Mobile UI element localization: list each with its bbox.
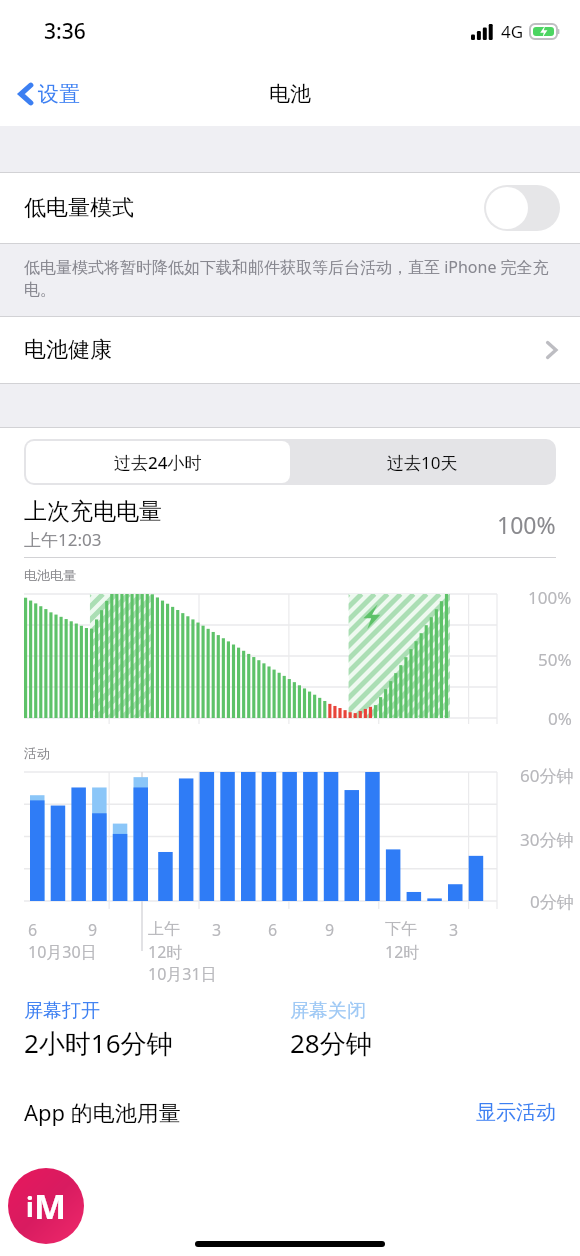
staticText: 100%: [497, 509, 556, 540]
staticText: 上午: [148, 919, 180, 939]
button[interactable]: 过去10天: [290, 441, 554, 483]
staticText: 4G: [501, 20, 524, 43]
button[interactable]: 低电量模式: [0, 173, 580, 243]
staticText: 10月30日: [28, 941, 97, 963]
staticText: 3: [449, 919, 459, 941]
staticText: 屏幕打开: [24, 999, 100, 1023]
staticText: 上次充电电量: [24, 497, 162, 526]
staticText: 低电量模式将暂时降低如下载和邮件获取等后台活动，直至 iPhone 完全充电。: [24, 256, 556, 300]
staticText: 9: [88, 919, 98, 941]
staticText: 50%: [538, 648, 572, 671]
staticText: 9: [325, 919, 335, 941]
staticText: 6: [28, 919, 38, 941]
staticText: 过去24小时: [114, 451, 202, 474]
staticText: 设置: [38, 81, 80, 107]
button[interactable]: 显示活动: [476, 1100, 556, 1125]
staticText: 显示活动: [476, 1100, 556, 1125]
button[interactable]: Low Power Mode toggle: [484, 185, 560, 231]
staticText: 12时: [385, 941, 420, 963]
staticText: 过去10天: [387, 451, 458, 474]
staticText: 10月31日: [148, 963, 217, 985]
staticText: 下午: [385, 919, 417, 939]
staticText: 0%: [548, 707, 572, 730]
staticText: 60分钟: [520, 764, 574, 787]
staticText: 电池电量: [24, 567, 76, 583]
staticText: 2小时16分钟: [24, 1025, 173, 1061]
button[interactable]: 电池健康: [0, 317, 580, 383]
staticText: 100%: [528, 586, 572, 609]
staticText: M: [34, 1183, 67, 1229]
staticText: 3:36: [44, 17, 86, 46]
staticText: 30分钟: [520, 828, 574, 851]
staticText: 28分钟: [290, 1025, 372, 1061]
staticText: 电池健康: [24, 336, 112, 364]
staticText: App 的电池用量: [24, 1097, 181, 1127]
staticText: 屏幕关闭: [290, 999, 366, 1023]
staticText: i: [26, 1189, 34, 1224]
staticText: 12时: [148, 941, 183, 963]
staticText: 3: [212, 919, 222, 941]
staticText: 0分钟: [530, 890, 574, 913]
staticText: 6: [268, 919, 278, 941]
staticText: 上午12:03: [24, 528, 102, 551]
staticText: 电池: [269, 81, 311, 107]
staticText: 活动: [24, 745, 50, 761]
button[interactable]: 过去24小时: [26, 441, 290, 483]
staticText: 低电量模式: [24, 194, 134, 222]
button[interactable]: 设置: [14, 75, 84, 113]
